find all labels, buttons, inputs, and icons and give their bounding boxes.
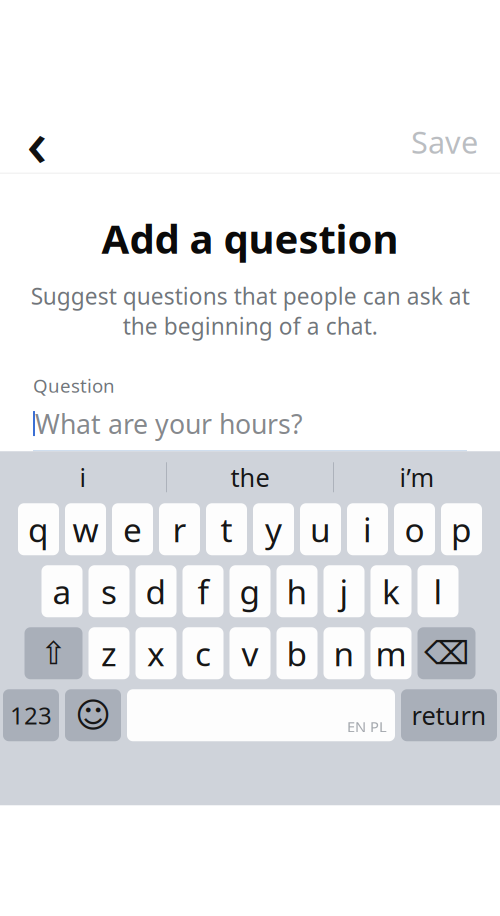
- staticText: f: [197, 569, 208, 613]
- button[interactable]: i: [0, 454, 166, 500]
- staticText: return: [411, 698, 486, 732]
- staticText: Question: [33, 373, 115, 398]
- staticText: b: [286, 631, 307, 675]
- button[interactable]: i: [347, 503, 388, 555]
- staticText: q: [28, 507, 49, 551]
- staticText: a: [52, 569, 71, 613]
- button[interactable]: b: [276, 627, 317, 679]
- button[interactable]: h: [276, 565, 317, 617]
- button[interactable]: j: [323, 565, 364, 617]
- button[interactable]: n: [323, 627, 364, 679]
- staticText: Suggest questions that people can ask at…: [30, 281, 469, 341]
- button[interactable]: d: [135, 565, 176, 617]
- staticText: c: [195, 631, 211, 675]
- staticText: h: [286, 569, 307, 613]
- button[interactable]: Save: [403, 118, 486, 166]
- staticText: Save: [411, 121, 478, 162]
- button[interactable]: w: [65, 503, 106, 555]
- button[interactable]: p: [441, 503, 482, 555]
- button[interactable]: s: [88, 565, 129, 617]
- staticText: ☺: [75, 696, 111, 735]
- staticText: v: [241, 631, 258, 675]
- staticText: r: [172, 507, 186, 551]
- button[interactable]: u: [300, 503, 341, 555]
- staticText: i: [363, 507, 372, 551]
- staticText: ‹: [26, 99, 47, 184]
- staticText: w: [72, 507, 98, 551]
- staticText: k: [382, 569, 400, 613]
- button[interactable]: 123: [3, 689, 59, 741]
- button[interactable]: a: [41, 565, 82, 617]
- staticText: 123: [10, 699, 52, 731]
- staticText: Add a question: [101, 212, 398, 265]
- button[interactable]: Shift: [24, 627, 82, 679]
- button[interactable]: the: [167, 454, 333, 500]
- staticText: d: [145, 569, 166, 613]
- staticText: p: [451, 507, 472, 551]
- button[interactable]: x: [135, 627, 176, 679]
- button[interactable]: y: [253, 503, 294, 555]
- staticText: m: [375, 631, 406, 675]
- staticText: j: [339, 569, 348, 613]
- staticText: g: [239, 569, 260, 613]
- staticText: s: [101, 569, 117, 613]
- staticText: l: [433, 569, 442, 613]
- button[interactable]: Space: [127, 689, 395, 741]
- button[interactable]: Back: [14, 118, 60, 166]
- button[interactable]: e: [112, 503, 153, 555]
- button[interactable]: o: [394, 503, 435, 555]
- button[interactable]: r: [159, 503, 200, 555]
- button[interactable]: q: [18, 503, 59, 555]
- staticText: u: [310, 507, 331, 551]
- button[interactable]: z: [88, 627, 129, 679]
- staticText: i: [79, 460, 86, 494]
- button[interactable]: return: [401, 689, 497, 741]
- staticText: n: [333, 631, 354, 675]
- staticText: the: [230, 460, 269, 494]
- button[interactable]: m: [370, 627, 411, 679]
- staticText: y: [265, 507, 282, 551]
- staticText: What are your hours?: [35, 406, 303, 441]
- staticText: z: [101, 631, 117, 675]
- button[interactable]: k: [370, 565, 411, 617]
- staticText: t: [220, 507, 232, 551]
- staticText: o: [404, 507, 424, 551]
- button[interactable]: t: [206, 503, 247, 555]
- button[interactable]: g: [229, 565, 270, 617]
- button[interactable]: Emoji: [65, 689, 121, 741]
- button[interactable]: f: [182, 565, 223, 617]
- staticText: EN PL: [347, 717, 387, 736]
- button[interactable]: c: [182, 627, 223, 679]
- button[interactable]: Delete: [417, 627, 475, 679]
- staticText: x: [147, 631, 165, 675]
- staticText: i’m: [399, 460, 434, 494]
- staticText: ⇧: [40, 635, 67, 671]
- staticText: ⌫: [424, 635, 469, 671]
- button[interactable]: l: [417, 565, 458, 617]
- button[interactable]: i’m: [334, 454, 500, 500]
- button[interactable]: v: [229, 627, 270, 679]
- staticText: e: [123, 507, 142, 551]
